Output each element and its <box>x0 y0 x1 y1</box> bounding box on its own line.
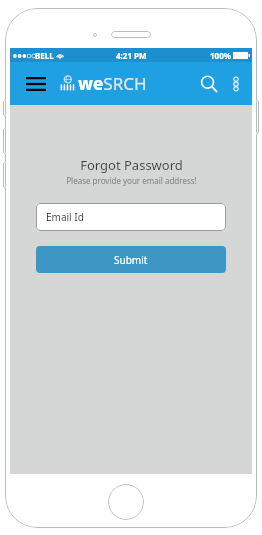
button[interactable]: Open navigation menu <box>23 71 49 97</box>
staticText: 100% <box>210 50 231 61</box>
button[interactable]: More options <box>225 73 247 95</box>
staticText: Please provide your email address! <box>66 175 197 186</box>
button[interactable]: Submit <box>36 246 226 273</box>
staticText: weSRCH <box>78 72 147 95</box>
staticText: 4:21 PM <box>116 50 147 61</box>
button[interactable]: Email Id <box>36 203 226 231</box>
staticText: Submit <box>114 253 148 267</box>
button[interactable]: Search <box>196 71 222 97</box>
staticText: BELL <box>35 50 54 61</box>
staticText: Forgot Password <box>80 156 183 174</box>
staticText: Email Id <box>46 210 84 224</box>
